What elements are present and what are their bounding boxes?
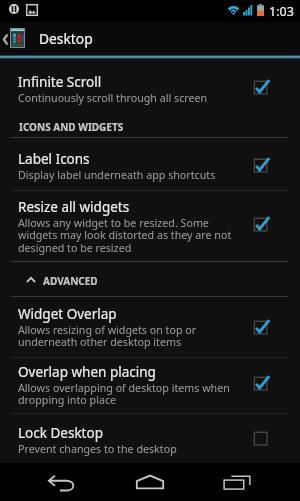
staticText: 1:03 xyxy=(269,3,294,20)
button[interactable]: Toggle setting xyxy=(253,431,275,453)
staticText: Continuously scroll through all screen xyxy=(18,91,208,106)
button[interactable]: Resize all widgets xyxy=(0,189,300,256)
staticText: Allows any widget to be resized. Some xyxy=(18,216,209,231)
staticText: ADVANCED xyxy=(43,274,98,288)
button[interactable]: Overlap when placing xyxy=(0,354,300,409)
staticText: underneath other desktop items xyxy=(18,335,182,350)
button[interactable]: Navigate up to Desktop settings xyxy=(0,22,300,55)
button[interactable]: Infinite Scroll xyxy=(0,64,300,106)
button[interactable]: Home xyxy=(124,463,176,501)
button[interactable]: Toggle setting xyxy=(253,376,275,398)
button[interactable]: Recent apps xyxy=(212,463,264,501)
staticText: widgets may look distorted as they are n… xyxy=(18,228,232,243)
button[interactable]: Label Icons xyxy=(0,141,300,183)
staticText: Infinite Scroll xyxy=(18,73,102,91)
button[interactable]: Toggle setting xyxy=(253,158,275,180)
staticText: Overlap when placing xyxy=(18,363,156,381)
button[interactable]: Widget Overlap xyxy=(0,296,300,351)
button[interactable]: Toggle setting xyxy=(253,320,275,342)
staticText: dropping into place xyxy=(18,393,117,408)
staticText: designed to be resized xyxy=(18,241,132,256)
staticText: Lock Desktop xyxy=(18,424,103,442)
staticText: Widget Overlap xyxy=(18,305,117,323)
staticText: ICONS AND WIDGETS xyxy=(19,120,124,134)
staticText: Resize all widgets xyxy=(18,198,130,216)
staticText: Label Icons xyxy=(18,150,90,168)
button[interactable]: Lock Desktop xyxy=(0,415,300,457)
button[interactable]: Toggle setting xyxy=(253,80,275,102)
button[interactable]: Toggle setting xyxy=(253,217,275,239)
staticText: Prevent changes to the desktop xyxy=(18,442,177,457)
staticText: Allows overlapping of desktop items when xyxy=(18,381,230,396)
staticText: Display label underneath app shortcuts xyxy=(18,168,216,183)
button[interactable]: Back xyxy=(36,463,88,501)
staticText: Allows resizing of widgets on top or xyxy=(18,323,197,338)
staticText: Desktop xyxy=(39,29,93,48)
